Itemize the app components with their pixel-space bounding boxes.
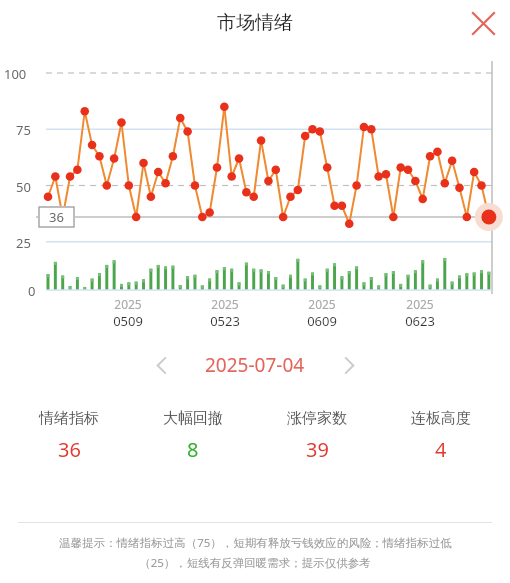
staticText: 情绪指标 (39, 409, 99, 428)
staticText: 8 (187, 436, 199, 463)
staticText: 大幅回撤 (163, 409, 223, 428)
staticText: 2025 (406, 296, 434, 312)
staticText: 39 (306, 436, 329, 463)
staticText: 2025 (211, 296, 239, 312)
staticText: 2025 (308, 296, 336, 312)
staticText: 温馨提示：情绪指标过高（75），短期有释放亏钱效应的风险；情绪指标过低 (59, 535, 452, 551)
staticText: 75 (16, 121, 31, 139)
staticText: 0623 (405, 312, 435, 330)
button[interactable]: 下一天 (329, 345, 369, 385)
staticText: 市场情绪 (217, 11, 293, 35)
staticText: 连板高度 (411, 409, 471, 428)
staticText: 2025 (114, 296, 142, 312)
button[interactable]: 2025-07-04 (201, 350, 309, 380)
staticText: 0523 (210, 312, 240, 330)
staticText: （25），短线有反弹回暖需求；提示仅供参考 (139, 555, 371, 571)
button[interactable]: 上一天 (141, 345, 181, 385)
staticText: 涨停家数 (287, 409, 347, 428)
staticText: 4 (435, 436, 447, 463)
button[interactable]: 连板高度 (386, 407, 496, 465)
staticText: 36 (49, 208, 64, 226)
staticText: 0 (28, 282, 36, 300)
staticText: 36 (58, 436, 81, 463)
staticText: 0609 (307, 312, 337, 330)
button[interactable]: 大幅回撤 (138, 407, 248, 465)
staticText: 25 (16, 234, 31, 252)
staticText: 50 (16, 178, 31, 196)
staticText: 100 (4, 65, 27, 83)
staticText: 2025-07-04 (205, 352, 305, 378)
button[interactable]: 涨停家数 (262, 407, 372, 465)
button[interactable]: 情绪指标 (14, 407, 124, 465)
staticText: 0509 (113, 312, 143, 330)
button[interactable]: 关闭 (461, 1, 505, 45)
